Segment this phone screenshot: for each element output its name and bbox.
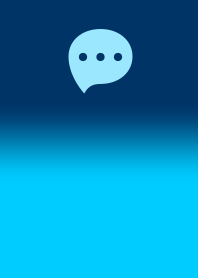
- button[interactable]: Typing message: [68, 29, 132, 93]
